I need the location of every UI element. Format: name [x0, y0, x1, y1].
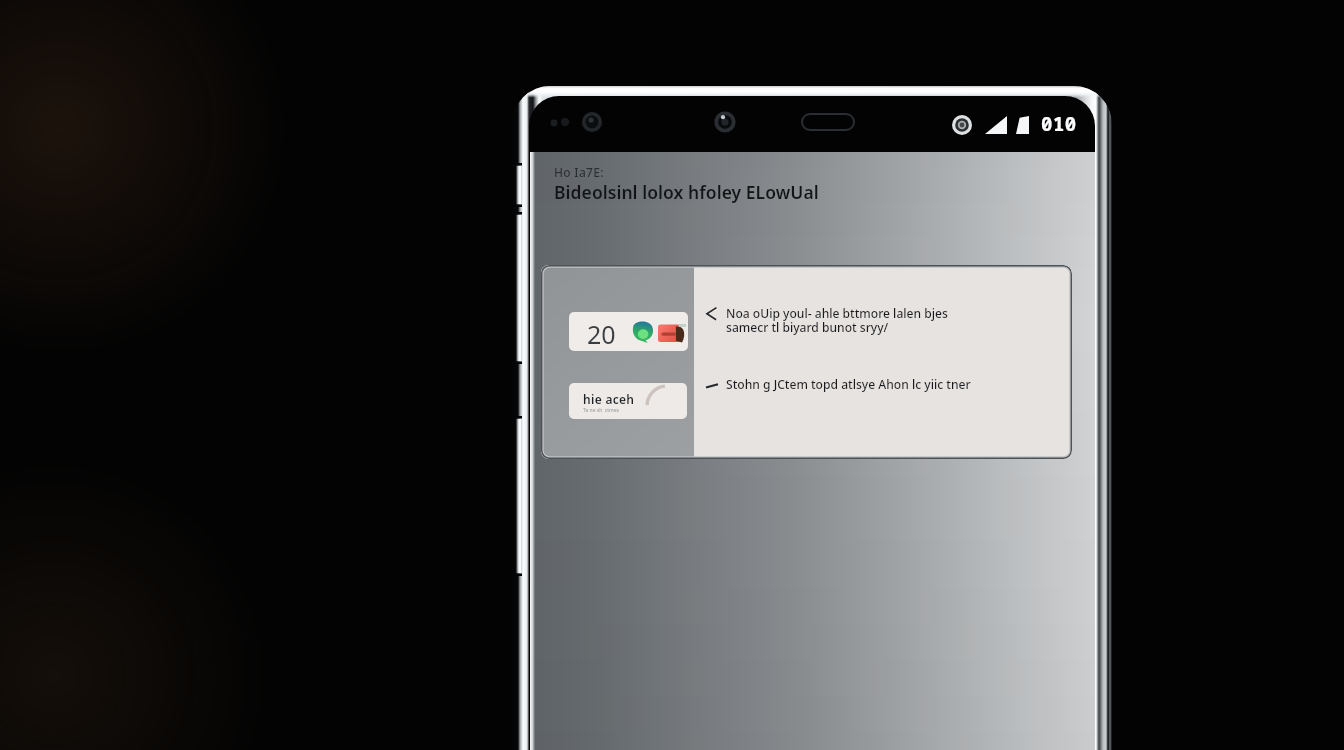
staticText: Ho Ia7E: [554, 164, 604, 180]
button[interactable]: Volume up [516, 163, 522, 207]
button[interactable]: Volume down [516, 212, 522, 364]
staticText: 20 [587, 317, 616, 351]
staticText: Noa oUip youl- ahle bttmore lalen bjes s… [726, 305, 948, 336]
button[interactable]: Power [516, 416, 522, 576]
button[interactable]: 20 [541, 265, 1072, 459]
button[interactable]: hie aceh [569, 383, 687, 419]
staticText: hie aceh [583, 391, 635, 407]
staticText: Te ne sh ctmes [583, 407, 619, 414]
staticText: Stohn g JCtem topd atlsye Ahon lc yiic t… [726, 376, 971, 392]
button[interactable]: 20 [569, 312, 688, 351]
staticText: 010 [1041, 111, 1077, 137]
staticText: Bideolsinl lolox hfoley ELowUal [554, 180, 819, 204]
